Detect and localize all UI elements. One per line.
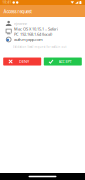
staticText: Mac OS X 10.15.1 – Safari — [14, 26, 58, 31]
button[interactable]: DENY — [3, 57, 41, 65]
staticText: PC 192.168.1.64 (local) — [14, 31, 52, 37]
staticText: Access request — [3, 9, 31, 14]
button[interactable]: ACCEPT — [44, 57, 82, 65]
staticText: auth.myapp.com — [14, 37, 43, 42]
staticText: ACCEPT — [58, 59, 71, 64]
staticText: Validation (text) request for walk-in ou… — [12, 45, 66, 49]
staticText: 10:41 — [2, 1, 11, 4]
staticText: DENY — [19, 59, 29, 64]
staticText: ejeanne — [14, 21, 27, 26]
